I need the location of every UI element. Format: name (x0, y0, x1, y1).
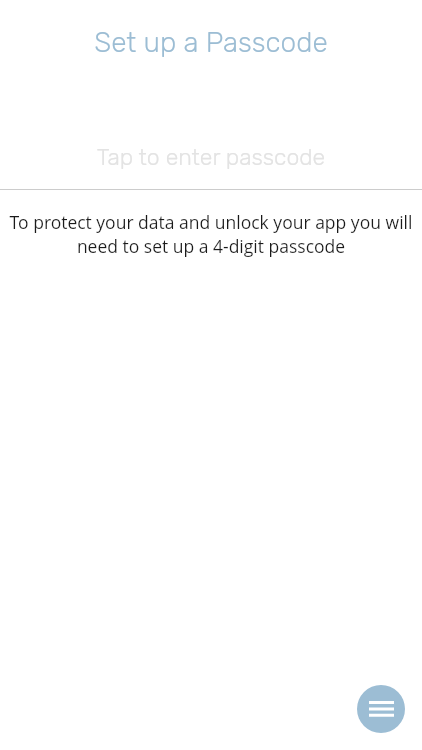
staticText: Set up a Passcode (0, 26, 422, 59)
button[interactable]: Tap to enter passcode (0, 104, 422, 189)
button[interactable]: Open menu (357, 685, 405, 733)
staticText: To protect your data and unlock your app… (8, 210, 414, 259)
staticText: Tap to enter passcode (0, 143, 422, 170)
